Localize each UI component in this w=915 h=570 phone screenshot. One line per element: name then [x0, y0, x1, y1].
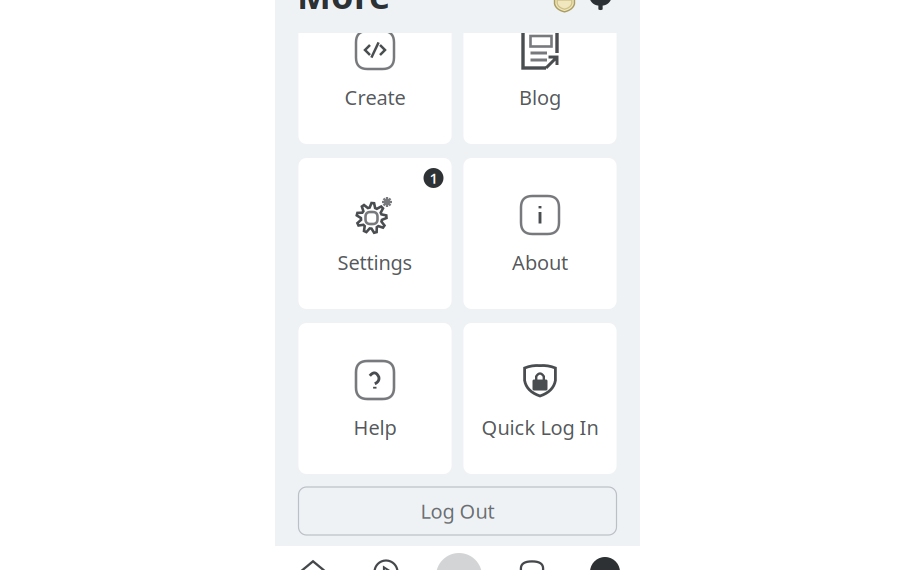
- button[interactable]: Rewards: [553, 0, 576, 13]
- button[interactable]: Quick Log In: [463, 323, 616, 474]
- staticText: About: [512, 249, 568, 276]
- button[interactable]: Watch: [360, 560, 412, 570]
- button[interactable]: Create post: [433, 553, 485, 570]
- button[interactable]: Filter: [590, 0, 611, 12]
- staticText: Create: [344, 84, 405, 111]
- staticText: Settings: [337, 249, 412, 276]
- button[interactable]: Help: [298, 323, 451, 474]
- staticText: 1: [429, 168, 437, 188]
- button[interactable]: Settings: [298, 158, 451, 309]
- button[interactable]: About: [463, 158, 616, 309]
- staticText: More: [297, 0, 390, 19]
- button[interactable]: Blog: [463, 0, 616, 144]
- button[interactable]: Profile: [579, 557, 631, 570]
- staticText: Blog: [519, 84, 561, 111]
- button[interactable]: Create: [298, 0, 451, 144]
- staticText: Log Out: [420, 498, 494, 524]
- staticText: Quick Log In: [481, 414, 598, 441]
- button[interactable]: Home: [287, 560, 339, 570]
- button[interactable]: Log Out: [298, 487, 616, 535]
- button[interactable]: Messages: [506, 560, 558, 570]
- staticText: Help: [353, 414, 396, 441]
